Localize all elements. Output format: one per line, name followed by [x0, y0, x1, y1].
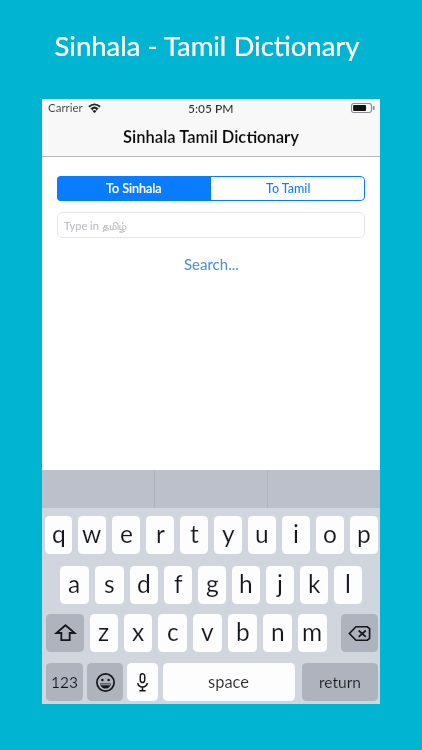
- staticText: k: [308, 569, 321, 598]
- staticText: r: [156, 519, 165, 548]
- button[interactable]: b: [228, 614, 257, 652]
- button[interactable]: k: [300, 566, 328, 604]
- staticText: space: [208, 672, 250, 692]
- button[interactable]: u: [248, 516, 276, 554]
- staticText: Sinhala - Tamil Dictionary: [0, 29, 418, 62]
- staticText: j: [277, 569, 283, 598]
- staticText: m: [302, 617, 323, 646]
- staticText: d: [137, 569, 151, 598]
- button[interactable]: w: [78, 516, 106, 554]
- staticText: To Sinhala: [106, 181, 162, 196]
- staticText: v: [201, 617, 214, 646]
- staticText: c: [167, 617, 179, 646]
- button[interactable]: To Tamil: [211, 176, 365, 201]
- staticText: To Tamil: [266, 181, 311, 196]
- button[interactable]: t: [180, 516, 208, 554]
- button[interactable]: r: [146, 516, 174, 554]
- button[interactable]: Search...: [42, 253, 380, 275]
- button[interactable]: o: [316, 516, 344, 554]
- button[interactable]: space: [163, 663, 295, 701]
- button[interactable]: a: [60, 566, 89, 604]
- staticText: e: [120, 519, 133, 548]
- staticText: p: [357, 519, 371, 548]
- button[interactable]: Dictation: [127, 663, 158, 701]
- button[interactable]: n: [263, 614, 292, 652]
- staticText: a: [68, 569, 81, 598]
- button[interactable]: z: [90, 614, 118, 652]
- staticText: x: [132, 617, 145, 646]
- staticText: l: [345, 569, 351, 598]
- staticText: return: [319, 673, 361, 692]
- staticText: 5:05 PM: [188, 101, 234, 115]
- button[interactable]: Backspace: [341, 614, 378, 652]
- staticText: Type in தமிழ்: [64, 219, 127, 232]
- button[interactable]: To Sinhala: [57, 176, 211, 201]
- staticText: s: [104, 569, 115, 598]
- button[interactable]: m: [298, 614, 327, 652]
- staticText: Carrier: [48, 101, 83, 115]
- staticText: Search...: [184, 255, 239, 273]
- staticText: h: [239, 569, 253, 598]
- button[interactable]: return: [302, 663, 378, 701]
- button[interactable]: Shift: [46, 614, 84, 652]
- button[interactable]: Emoji keyboard: [87, 663, 123, 701]
- button[interactable]: 123: [46, 663, 83, 701]
- button[interactable]: l: [334, 566, 362, 604]
- staticText: n: [271, 617, 285, 646]
- staticText: i: [293, 519, 299, 548]
- button[interactable]: q: [45, 516, 72, 554]
- button[interactable]: d: [130, 566, 158, 604]
- staticText: 123: [51, 673, 78, 692]
- button[interactable]: j: [266, 566, 294, 604]
- button[interactable]: g: [198, 566, 226, 604]
- button[interactable]: p: [350, 516, 378, 554]
- staticText: o: [323, 519, 337, 548]
- button[interactable]: x: [124, 614, 152, 652]
- button[interactable]: Type in தமிழ்: [57, 212, 365, 238]
- button[interactable]: f: [164, 566, 192, 604]
- staticText: z: [98, 617, 110, 646]
- staticText: f: [174, 569, 183, 598]
- button[interactable]: i: [282, 516, 310, 554]
- staticText: y: [222, 519, 235, 548]
- staticText: u: [255, 519, 269, 548]
- staticText: t: [190, 519, 199, 548]
- staticText: q: [52, 519, 66, 548]
- staticText: g: [206, 569, 219, 598]
- button[interactable]: s: [95, 566, 124, 604]
- button[interactable]: h: [232, 566, 260, 604]
- button[interactable]: y: [214, 516, 242, 554]
- staticText: w: [82, 519, 102, 548]
- button[interactable]: c: [158, 614, 187, 652]
- button[interactable]: v: [193, 614, 222, 652]
- staticText: b: [236, 617, 250, 646]
- button[interactable]: e: [112, 516, 140, 554]
- staticText: Sinhala Tamil Dictionary: [123, 127, 299, 147]
